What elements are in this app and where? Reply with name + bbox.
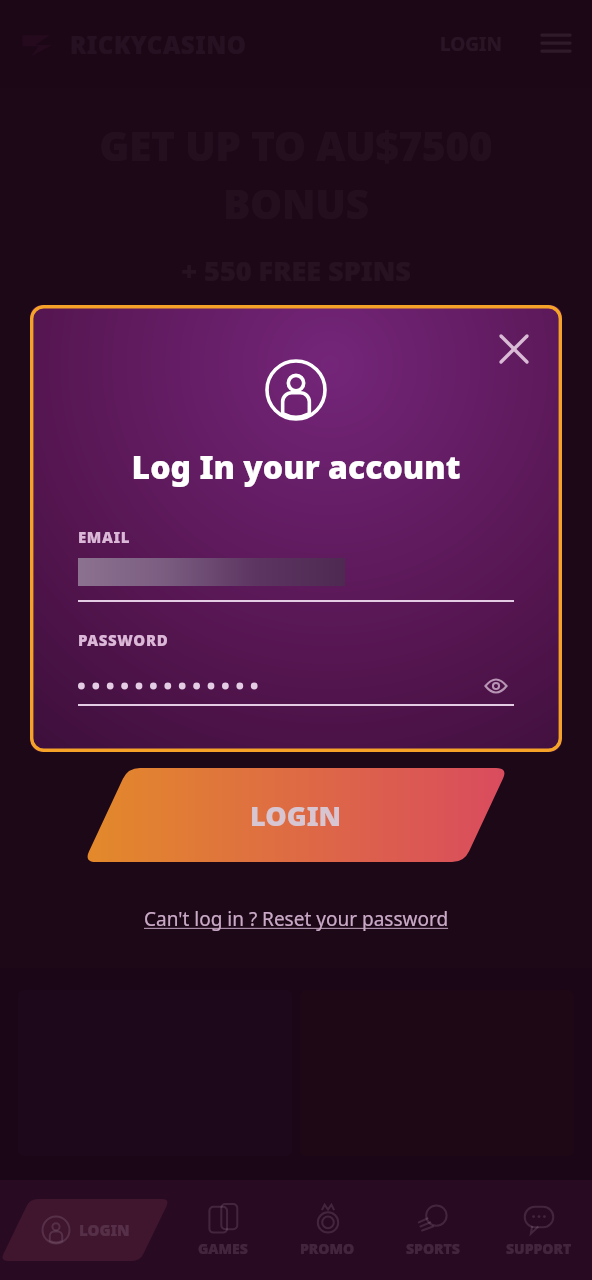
staticText: EMAIL — [78, 527, 130, 547]
button[interactable]: LOGIN — [434, 25, 508, 63]
staticText: Log In your account — [30, 445, 562, 489]
staticText: GAMES — [198, 1239, 248, 1258]
button[interactable]: Close — [492, 327, 536, 371]
staticText: RICKYCASINO — [70, 28, 247, 61]
button[interactable]: LOGIN — [84, 768, 508, 862]
button[interactable]: Show password — [78, 666, 514, 706]
button[interactable]: Can't log in ? Reset your password — [136, 898, 457, 940]
button[interactable]: SPORTS — [380, 1180, 486, 1280]
button[interactable]: PROMO — [275, 1180, 380, 1280]
button[interactable]: Show password — [478, 668, 514, 704]
staticText: SUPPORT — [506, 1239, 572, 1258]
button[interactable]: SUPPORT — [486, 1180, 592, 1280]
button[interactable]: GAMES — [170, 1180, 275, 1280]
button[interactable]: Menu — [538, 26, 574, 62]
staticText: LOGIN — [440, 31, 502, 57]
staticText: LOGIN — [79, 1220, 130, 1240]
button[interactable] — [78, 558, 514, 602]
staticText: SPORTS — [406, 1239, 460, 1258]
staticText: LOGIN — [250, 797, 342, 834]
staticText: PASSWORD — [78, 630, 169, 650]
staticText: PROMO — [300, 1239, 355, 1258]
button[interactable]: LOGIN — [0, 1199, 170, 1261]
staticText: Can't log in ? Reset your password — [144, 906, 449, 932]
